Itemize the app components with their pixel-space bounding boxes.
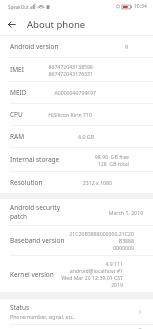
staticText: A0000040799F97 xyxy=(54,89,96,96)
staticText: IMEI xyxy=(10,65,24,74)
staticText: Resolution xyxy=(10,178,43,187)
staticText: Wed Mar 20 12:39:01 CST 2019 xyxy=(58,274,123,288)
staticText: Android version xyxy=(10,42,59,51)
staticText: CPU xyxy=(10,110,23,119)
button[interactable]: Back xyxy=(0,13,22,35)
button[interactable]: MEID xyxy=(0,82,153,103)
button[interactable]: Baseband version xyxy=(0,226,153,255)
staticText: Android security patch xyxy=(10,203,74,221)
staticText: 4.9.111 xyxy=(105,260,123,267)
button[interactable]: RAM xyxy=(0,126,153,147)
staticText: 0000000 xyxy=(113,244,134,251)
staticText: 9 xyxy=(125,43,128,50)
staticText: MEID xyxy=(10,88,27,97)
staticText: 10:34 xyxy=(134,3,147,10)
staticText: Phone number, signal, etc. xyxy=(10,313,75,320)
button[interactable]: Resolution xyxy=(0,172,153,193)
staticText: March 1, 2019 xyxy=(108,209,143,216)
staticText: 21C20B3888000000,21C20B3888 xyxy=(69,230,134,244)
staticText: SpeakOut xyxy=(8,4,29,10)
button[interactable]: Android version xyxy=(0,36,153,57)
staticText: HiSilicon Kirin 710 xyxy=(48,111,92,118)
button[interactable]: IMEI xyxy=(0,58,153,81)
staticText: android@localhost #1 xyxy=(69,267,123,274)
staticText: Baseband version xyxy=(10,236,65,245)
staticText: 2312 x 1080 xyxy=(82,179,112,186)
staticText: RAM xyxy=(10,132,25,141)
button[interactable]: Android security patch xyxy=(0,199,153,225)
button[interactable]: Status xyxy=(0,299,153,324)
staticText: 867472043138596 xyxy=(48,63,93,70)
staticText: 128 GB total xyxy=(97,160,129,167)
staticText: 867472043176331 xyxy=(48,70,93,77)
staticText: About phone xyxy=(27,18,86,31)
button[interactable]: Kernel version xyxy=(0,256,153,292)
staticText: Kernel version xyxy=(10,270,54,279)
staticText: Status xyxy=(10,303,30,312)
button[interactable]: CPU xyxy=(0,104,153,125)
staticText: 98.96 GB free xyxy=(94,153,129,160)
button[interactable]: Internal storage xyxy=(0,148,153,171)
staticText: 6.0 GB xyxy=(78,133,94,140)
staticText: Internal storage xyxy=(10,155,60,164)
